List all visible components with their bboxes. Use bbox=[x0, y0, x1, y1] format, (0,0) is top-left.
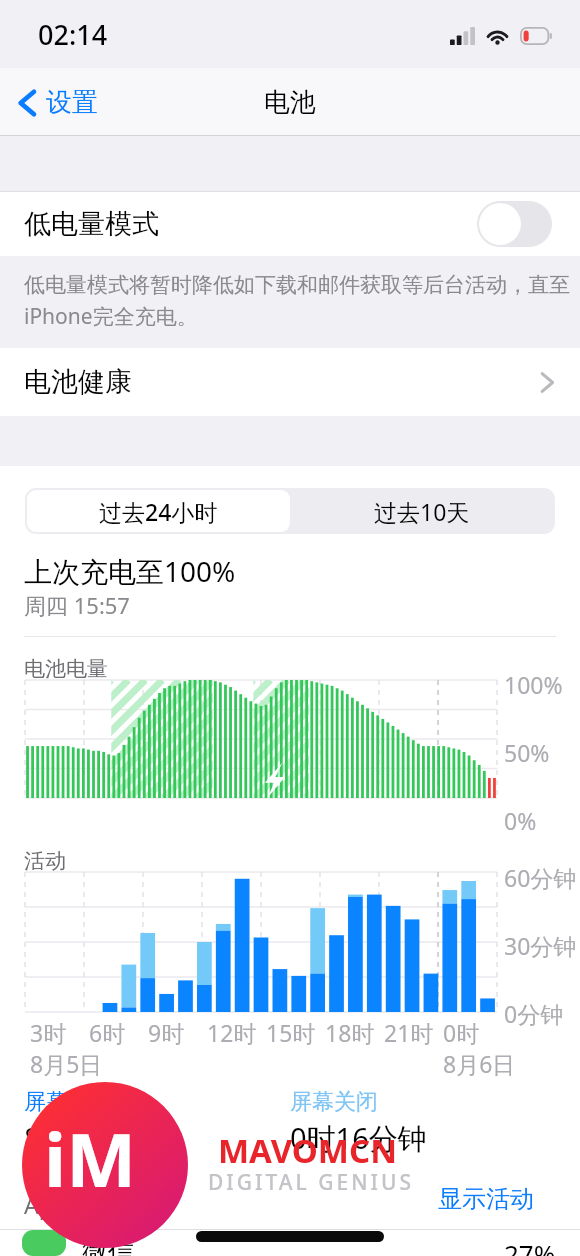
button[interactable]: 过去24小时 bbox=[27, 490, 290, 532]
staticText: 27% bbox=[504, 1236, 556, 1256]
button[interactable]: 显示活动 bbox=[438, 1184, 534, 1214]
staticText: 上次充电至100% bbox=[24, 552, 236, 590]
staticText: 电池健康 bbox=[24, 365, 132, 399]
staticText: 3时 bbox=[30, 1017, 67, 1048]
staticText: 21时 bbox=[384, 1017, 434, 1048]
staticText: 周四 15:57 bbox=[24, 590, 130, 620]
button[interactable]: 设置 bbox=[12, 78, 104, 127]
staticText: 0时16分钟 bbox=[290, 1118, 427, 1158]
staticText: 屏幕开启 bbox=[24, 1088, 112, 1116]
staticText: 电池 bbox=[264, 86, 316, 119]
staticText: 100% bbox=[504, 669, 563, 700]
staticText: 设置 bbox=[46, 86, 98, 119]
button[interactable]: 电池健康 bbox=[0, 348, 580, 416]
staticText: 18时 bbox=[325, 1017, 375, 1048]
staticText: 0时 bbox=[443, 1017, 480, 1048]
staticText: 8月5日 bbox=[30, 1048, 103, 1079]
button[interactable]: 低电量模式 bbox=[0, 191, 580, 256]
staticText: MAVOMCN bbox=[218, 1128, 397, 1173]
staticText: 屏幕关闭 bbox=[290, 1088, 378, 1116]
staticText: 0% bbox=[504, 805, 537, 836]
staticText: DIGITAL GENIUS bbox=[208, 1168, 414, 1197]
staticText: App bbox=[24, 1189, 67, 1220]
staticText: 15时 bbox=[266, 1017, 316, 1048]
staticText: 过去10天 bbox=[374, 496, 470, 527]
button[interactable]: 过去10天 bbox=[290, 490, 553, 532]
staticText: 0分钟 bbox=[504, 998, 564, 1029]
staticText: 9时 bbox=[148, 1017, 185, 1048]
staticText: 低电量模式 bbox=[24, 207, 159, 241]
staticText: 活动 bbox=[24, 848, 66, 874]
staticText: 过去24小时 bbox=[99, 496, 218, 527]
staticText: 12时 bbox=[207, 1017, 257, 1048]
staticText: 6时 bbox=[89, 1017, 126, 1048]
staticText: 低电量模式将暂时降低如下载和邮件获取等后台活动，直至 iPhone完全充电。 bbox=[24, 272, 570, 330]
staticText: 30分钟 bbox=[504, 930, 577, 961]
button[interactable]: 低电量模式开关 bbox=[477, 201, 552, 247]
staticText: 8月6日 bbox=[443, 1048, 516, 1079]
staticText: 电池电量 bbox=[24, 656, 108, 682]
staticText: iM bbox=[44, 1108, 136, 1209]
staticText: 50% bbox=[504, 737, 550, 768]
staticText: 8时56分钟 bbox=[24, 1118, 161, 1158]
staticText: 60分钟 bbox=[504, 862, 577, 893]
staticText: 02:14 bbox=[38, 16, 108, 53]
staticText: 微信 bbox=[82, 1236, 134, 1256]
